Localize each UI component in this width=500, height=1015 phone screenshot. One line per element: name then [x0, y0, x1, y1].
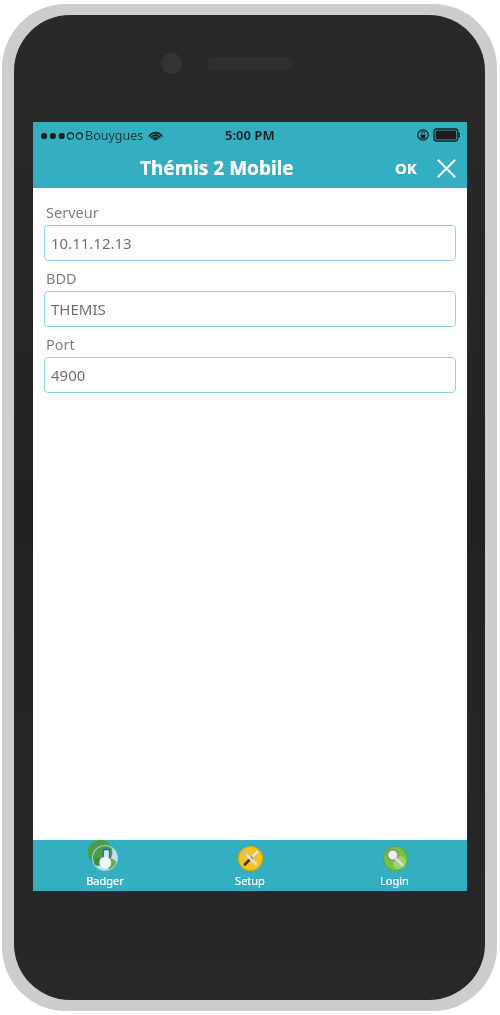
- staticText: Login: [380, 873, 409, 888]
- staticText: 10.11.12.13: [51, 233, 132, 253]
- button[interactable]: OK: [387, 152, 425, 184]
- button[interactable]: THEMIS: [44, 291, 456, 327]
- staticText: THEMIS: [51, 299, 106, 319]
- staticText: Setup: [235, 873, 265, 888]
- staticText: Serveur: [46, 202, 99, 222]
- staticText: OK: [395, 158, 417, 178]
- staticText: 5:00 PM: [225, 126, 275, 144]
- staticText: Bouygues: [85, 127, 144, 144]
- button[interactable]: Badger: [33, 840, 177, 891]
- button[interactable]: 10.11.12.13: [44, 225, 456, 261]
- button[interactable]: Close: [425, 153, 467, 183]
- staticText: Port: [46, 334, 75, 354]
- staticText: Thémis 2 Mobile: [140, 155, 294, 181]
- button[interactable]: Setup: [177, 840, 322, 891]
- button[interactable]: Login: [322, 840, 467, 891]
- staticText: Badger: [86, 873, 124, 888]
- staticText: 4900: [51, 365, 86, 385]
- button[interactable]: 4900: [44, 357, 456, 393]
- staticText: BDD: [46, 268, 77, 288]
